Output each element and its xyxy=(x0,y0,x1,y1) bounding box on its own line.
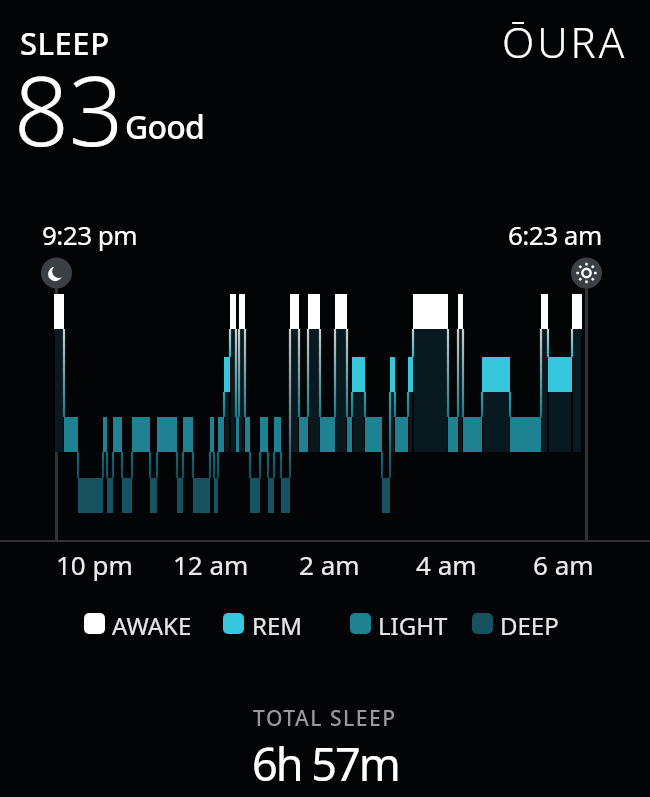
staticText: 83 xyxy=(14,43,124,174)
staticText: REM xyxy=(252,609,303,642)
staticText: 6 am xyxy=(533,547,594,582)
staticText: 10 pm xyxy=(56,547,133,582)
staticText: AWAKE xyxy=(112,609,192,642)
button[interactable]: ŌURA xyxy=(502,13,628,70)
staticText: DEEP xyxy=(500,609,559,642)
staticText: Good xyxy=(125,105,205,149)
staticText: 6h 57m xyxy=(252,733,399,794)
staticText: LIGHT xyxy=(378,609,448,642)
staticText: TOTAL SLEEP xyxy=(253,704,397,733)
staticText: 6:23 am xyxy=(508,217,602,252)
staticText: SLEEP xyxy=(20,22,110,64)
staticText: 9:23 pm xyxy=(42,217,138,252)
staticText: 2 am xyxy=(299,547,360,582)
staticText: 4 am xyxy=(416,547,477,582)
staticText: 12 am xyxy=(173,547,249,582)
